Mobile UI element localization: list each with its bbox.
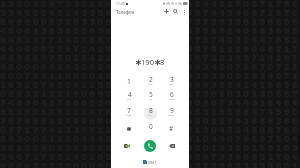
button[interactable] — [118, 121, 140, 137]
staticText: 8007831166501852968612703939062834071914 — [0, 71, 300, 81]
staticText: 6854797396004894611068343739893395501537 — [0, 161, 300, 168]
staticText: 11:05 — [116, 1, 125, 6]
staticText: 7 — [127, 106, 131, 115]
staticText: ABC — [148, 83, 153, 86]
staticText: # — [169, 124, 174, 133]
button[interactable]: 9 — [161, 105, 182, 121]
button[interactable]: Video call — [121, 140, 133, 152]
staticText: + — [150, 130, 152, 133]
staticText: PQRS — [126, 114, 132, 117]
staticText: 7483042786622409741848630207344318464584 — [0, 98, 300, 108]
staticText: GHI — [127, 98, 132, 101]
staticText: 8519018533147845390449945919568474990923 — [0, 107, 300, 117]
staticText: MNO — [169, 98, 175, 101]
button[interactable]: 2 — [140, 74, 161, 90]
staticText: DEF — [169, 83, 174, 86]
staticText: 4 — [128, 90, 132, 99]
button[interactable]: Backspace — [166, 140, 178, 152]
staticText: Телефон — [116, 9, 135, 15]
button[interactable]: More options — [180, 8, 188, 16]
staticText: 9345554524335836074320785744940872575945 — [0, 8, 300, 18]
button[interactable]: 1 — [118, 74, 140, 90]
button[interactable]: 6 — [161, 89, 182, 105]
staticText: 0803212219089791875238517361030130567519 — [0, 89, 300, 99]
button[interactable]: 4 — [118, 89, 140, 105]
button[interactable]: # — [161, 121, 182, 137]
button[interactable]: Add contact — [162, 7, 171, 16]
staticText: 3 — [170, 75, 174, 84]
button[interactable]: 3 — [161, 74, 182, 90]
staticText: TUV — [148, 114, 153, 117]
staticText: 5430021150444888327684031049076597504002 — [0, 134, 300, 144]
staticText: 0771774233971202201314371904524868786821 — [0, 125, 300, 135]
staticText: WXYZ — [168, 114, 175, 117]
staticText: 1 — [127, 77, 131, 86]
staticText: SIM 1 — [148, 160, 157, 164]
staticText: 8 — [149, 106, 153, 115]
button[interactable]: 7 — [118, 105, 140, 121]
button[interactable]: Search — [171, 7, 180, 16]
staticText: 4506138382269113941972257989240983699319 — [0, 26, 300, 36]
staticText: 0 — [149, 122, 153, 131]
staticText: 6452177140788756542463277874030447652883 — [0, 35, 300, 45]
button[interactable]: 0 — [140, 121, 161, 137]
staticText: 1692578538125547013296998635542416898405 — [0, 80, 300, 90]
staticText: JKL — [149, 98, 153, 101]
staticText: 6 — [170, 90, 174, 99]
staticText: 4596897502542234398646856728369724267342 — [0, 53, 300, 63]
staticText: 8 — [160, 57, 165, 67]
staticText: 9 — [170, 106, 174, 115]
staticText: 1255401947610796785091199741000193713123 — [0, 167, 300, 168]
button[interactable]: Call — [144, 140, 156, 152]
staticText: 4500064183282460770083256345078670728593 — [0, 62, 300, 72]
staticText: 4406662797142508190395235751229068217791 — [0, 44, 300, 54]
staticText: 5669005325330639046527973729396108508332 — [0, 17, 300, 27]
staticText: 190 — [141, 57, 155, 67]
button[interactable]: 8 — [140, 105, 161, 121]
staticText: 2 — [149, 75, 153, 84]
staticText: 9467273524916918823084235873368851704756 — [0, 152, 300, 162]
staticText: 1350364733518472482430562445170571765172 — [0, 0, 300, 9]
button[interactable]: 5 — [140, 89, 161, 105]
staticText: 2815640539358826973797336013366159103553 — [0, 143, 300, 153]
staticText: 7576583275566697343915845022763688388098 — [0, 116, 300, 126]
staticText: 5 — [149, 90, 153, 99]
